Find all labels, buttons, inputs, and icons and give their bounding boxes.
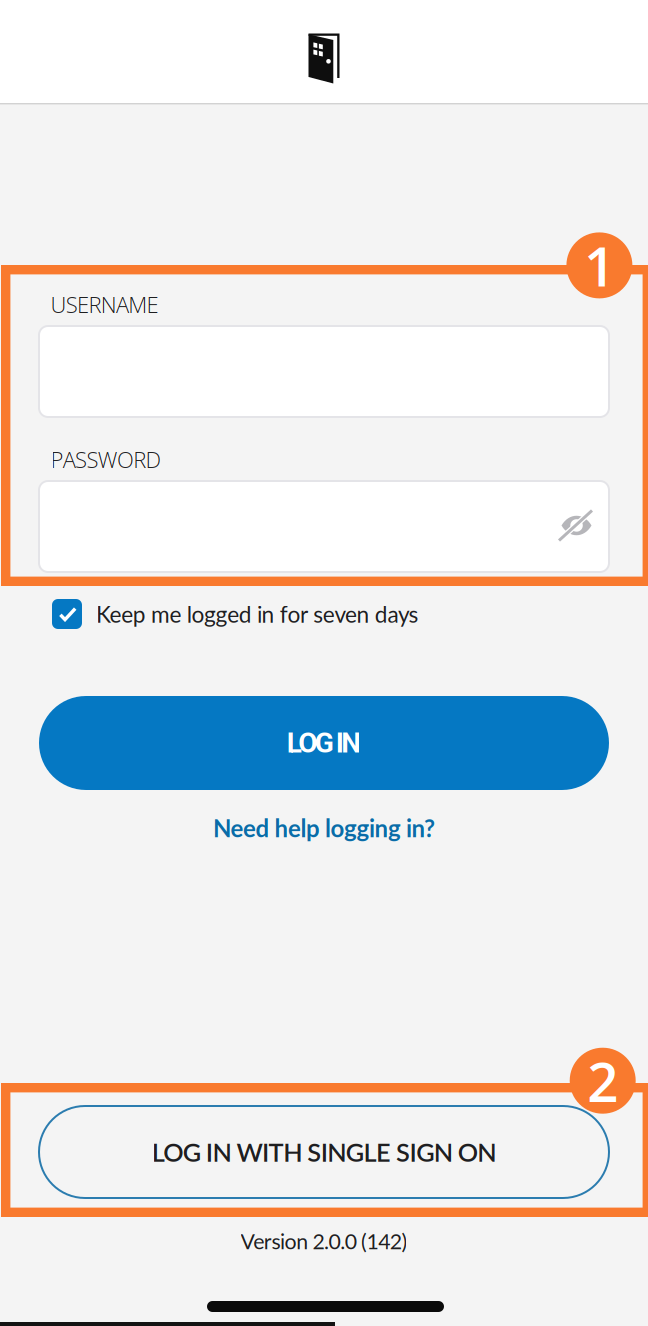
button[interactable]: LOG IN <box>39 696 609 790</box>
button[interactable]: Need help logging in? <box>184 808 464 848</box>
button[interactable]: LOG IN WITH SINGLE SIGN ON <box>39 1106 609 1198</box>
staticText: PASSWORD <box>50 444 162 474</box>
staticText: Keep me logged in for seven days <box>96 600 419 628</box>
staticText: Version 2.0.0 (142) <box>241 1228 407 1254</box>
staticText: 1 <box>584 228 615 303</box>
button[interactable]: Keep me logged in for seven days <box>52 597 424 631</box>
staticText: LOG IN <box>287 727 361 759</box>
staticText: USERNAME <box>50 289 159 319</box>
staticText: LOG IN WITH SINGLE SIGN ON <box>152 1137 496 1167</box>
staticText: 2 <box>587 1043 618 1118</box>
staticText: Need help logging in? <box>213 814 435 842</box>
